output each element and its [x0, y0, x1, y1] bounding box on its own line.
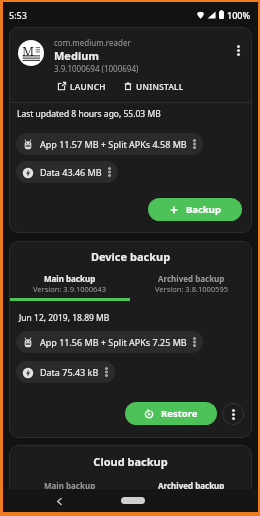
staticText: Last updated 8 hours ago, 55.03 MB: [17, 108, 161, 120]
staticText: 100%: [227, 9, 251, 21]
staticText: Main backup: [44, 273, 96, 284]
staticText: Medium: [54, 48, 100, 63]
staticText: UNINSTALL: [136, 81, 184, 92]
staticText: Version: 3.8.1000595: [155, 284, 228, 294]
button[interactable]: LAUNCH: [55, 78, 109, 94]
staticText: Data 43.46 MB: [40, 166, 102, 178]
button[interactable]: Archived backup: [130, 480, 252, 491]
staticText: Archived backup: [158, 273, 225, 284]
button[interactable]: Restore: [125, 402, 217, 425]
staticText: Device backup: [9, 249, 252, 264]
button[interactable]: More: [222, 403, 244, 425]
button[interactable]: Main backup: [9, 480, 130, 491]
button[interactable]: App 11.57 MB + Split APKs 4.58 MB: [16, 133, 203, 155]
staticText: Restore: [161, 407, 198, 420]
staticText: Archived backup: [158, 480, 225, 491]
button[interactable]: Archived backup: [130, 273, 252, 294]
staticText: Data 75.43 kB: [40, 366, 99, 378]
button[interactable]: Main backup: [9, 273, 130, 301]
button[interactable]: Data 75.43 kB: [16, 361, 115, 383]
button[interactable]: App 11.56 MB + Split APKs 7.25 MB: [16, 331, 203, 353]
button[interactable]: Back: [51, 493, 67, 509]
button[interactable]: Backup: [148, 198, 242, 221]
staticText: M: [22, 42, 35, 60]
staticText: App 11.57 MB + Split APKs 4.58 MB: [40, 138, 187, 150]
staticText: Main backup: [44, 480, 96, 491]
button[interactable]: Data 43.46 MB: [16, 161, 118, 183]
button[interactable]: UNINSTALL: [121, 78, 187, 94]
staticText: 3.9.1000694 (1000694): [54, 63, 139, 74]
staticText: com.medium.reader: [54, 37, 131, 48]
button[interactable]: Home: [121, 497, 145, 504]
staticText: Cloud backup: [9, 454, 252, 469]
staticText: App 11.56 MB + Split APKs 7.25 MB: [40, 336, 187, 348]
staticText: 5:53: [9, 9, 27, 21]
staticText: Backup: [186, 203, 221, 216]
button[interactable]: More options: [228, 40, 248, 60]
staticText: Jun 12, 2019, 18.89 MB: [19, 312, 110, 324]
staticText: LAUNCH: [70, 81, 106, 92]
staticText: Version: 3.9.1000643: [33, 284, 106, 294]
